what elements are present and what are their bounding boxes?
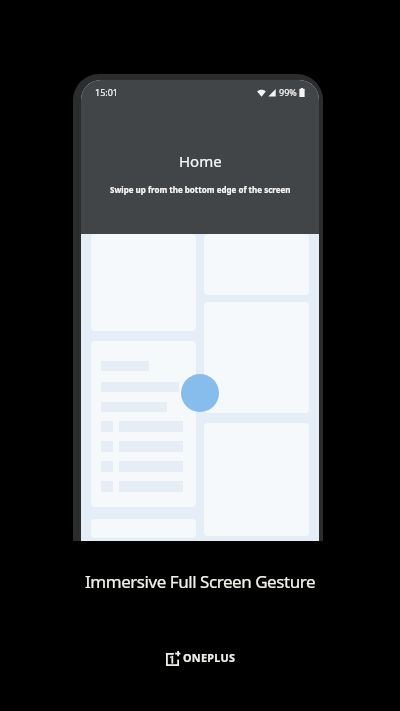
other: OnePlus logo: [166, 651, 181, 666]
button[interactable]: List item: [101, 421, 183, 432]
other: Battery: [299, 88, 305, 97]
staticText: Swipe up from the bottom edge of the scr…: [110, 184, 291, 195]
staticText: ONEPLUS: [183, 650, 236, 665]
staticText: 15:01: [95, 86, 119, 98]
other: Wi-Fi: [257, 88, 266, 97]
button[interactable]: List item: [101, 481, 183, 492]
other: Signal: [268, 88, 276, 97]
button[interactable]: List item: [101, 461, 183, 472]
button[interactable]: List item: [91, 341, 196, 507]
button[interactable]: Card: [204, 302, 309, 413]
staticText: 99%: [279, 86, 297, 98]
staticText: Immersive Full Screen Gesture: [0, 570, 400, 593]
button[interactable]: Compose: [181, 374, 219, 412]
staticText: Home: [179, 151, 222, 171]
button[interactable]: List item: [101, 441, 183, 452]
